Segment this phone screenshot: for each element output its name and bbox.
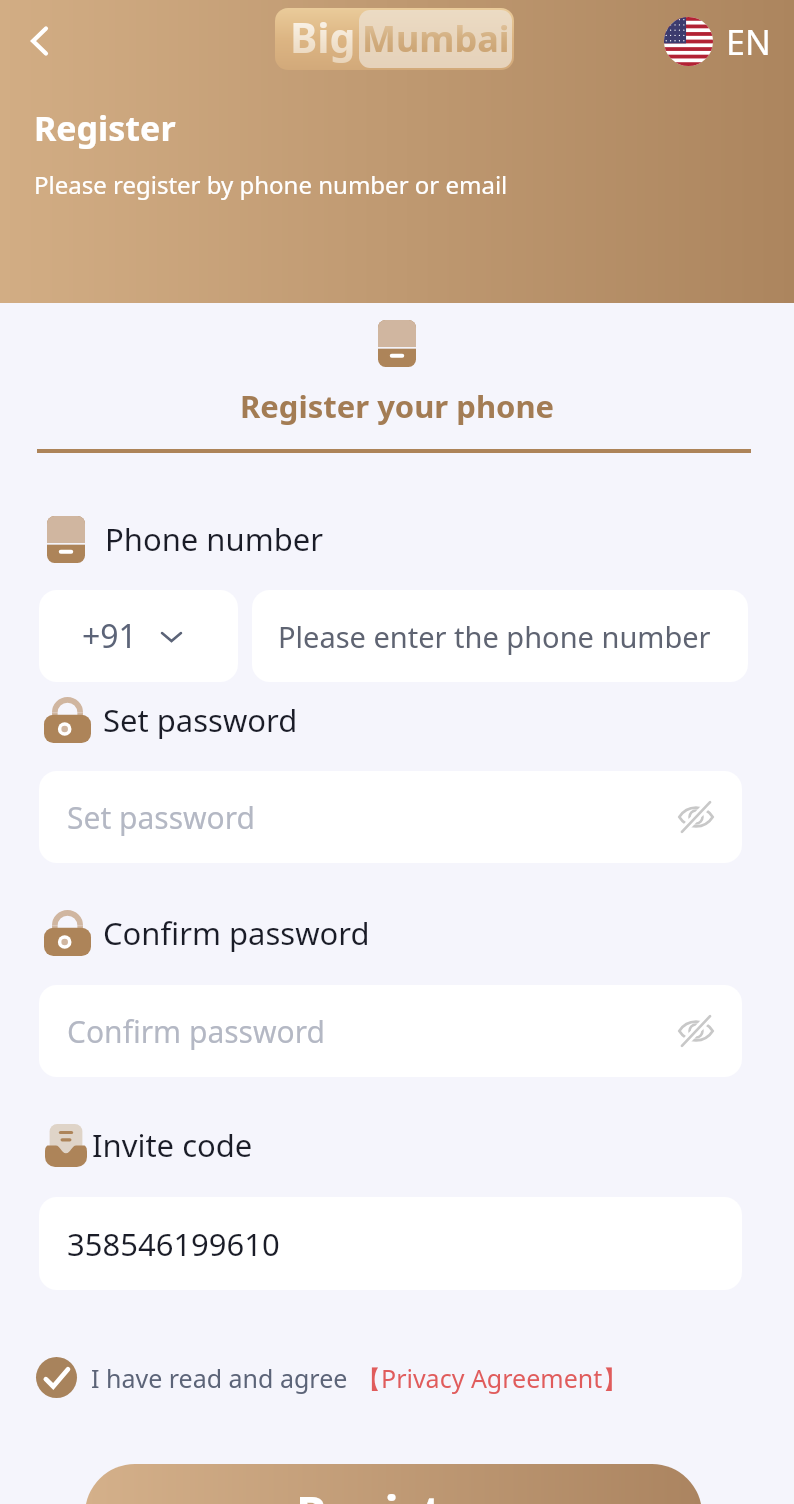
button[interactable]: 358546199610: [39, 1197, 742, 1290]
button[interactable]: Confirm password: [39, 985, 742, 1077]
staticText: Big: [290, 9, 356, 65]
button[interactable]: Set password: [39, 771, 742, 863]
staticText: Confirm password: [67, 1011, 325, 1052]
button[interactable]: Toggle password visibility: [674, 1009, 718, 1053]
staticText: Set password: [103, 699, 298, 741]
staticText: Set password: [67, 797, 256, 838]
button[interactable]: Toggle password visibility: [674, 795, 718, 839]
button[interactable]: Register: [85, 1464, 702, 1504]
staticText: Confirm password: [103, 912, 370, 954]
button[interactable]: Please enter the phone number: [252, 590, 748, 682]
staticText: 358546199610: [67, 1223, 280, 1265]
staticText: Mumbai: [362, 14, 510, 63]
staticText: Register: [34, 105, 176, 151]
staticText: I have read and agree: [91, 1361, 348, 1395]
staticText: EN: [726, 19, 771, 65]
staticText: Register your phone: [240, 385, 555, 427]
button[interactable]: I have read and agree: [36, 1357, 774, 1398]
staticText: 【Privacy Agreement】: [356, 1361, 628, 1395]
button[interactable]: Back: [16, 17, 63, 64]
staticText: +91: [82, 614, 137, 658]
staticText: Register: [296, 1480, 492, 1504]
staticText: Invite code: [92, 1124, 253, 1166]
staticText: Phone number: [105, 518, 324, 560]
staticText: Please enter the phone number: [278, 617, 711, 656]
button[interactable]: EN: [664, 17, 771, 66]
button[interactable]: +91: [39, 590, 238, 682]
staticText: Please register by phone number or email: [34, 168, 508, 201]
